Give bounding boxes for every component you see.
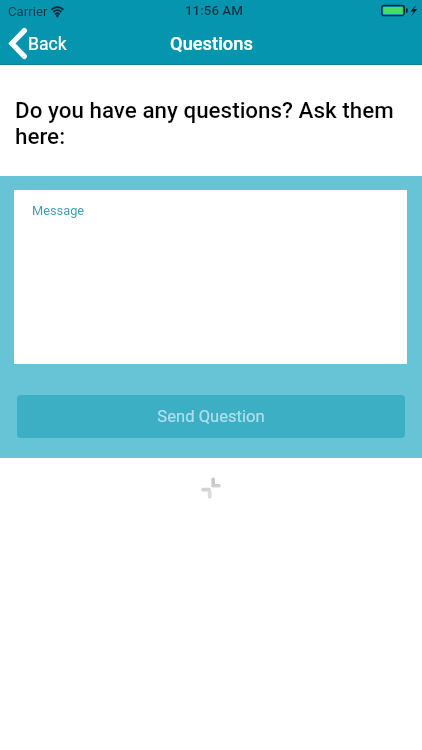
staticText: Send Question [157,407,265,426]
staticText: Back [28,34,67,55]
other: Loading [196,473,226,503]
button[interactable]: Back [0,22,77,65]
staticText: Questions [170,33,253,54]
staticText: Message [32,203,85,218]
button[interactable]: Message [14,190,407,364]
staticText: 11:56 AM [185,3,243,19]
staticText: Do you have any questions? Ask them here… [15,97,405,149]
button[interactable]: Send Question [17,395,405,438]
staticText: Carrier [8,4,48,19]
